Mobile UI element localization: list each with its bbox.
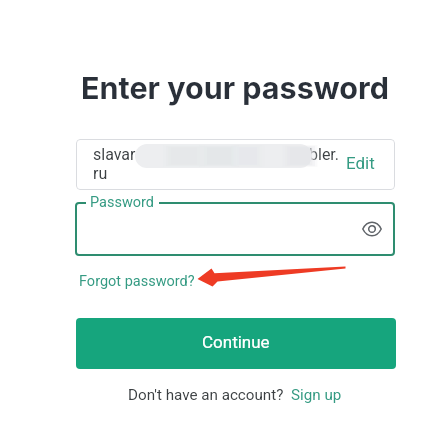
- button[interactable]: Sign up: [291, 386, 342, 404]
- staticText: slavar: [93, 145, 136, 164]
- staticText: Continue: [202, 332, 270, 352]
- button[interactable]: Forgot password?: [79, 273, 195, 290]
- staticText: Enter your password: [81, 69, 389, 106]
- button[interactable]: Edit: [346, 153, 375, 173]
- button[interactable]: Show password: [359, 216, 385, 242]
- staticText: ru: [93, 164, 108, 183]
- staticText: bler.: [309, 145, 340, 164]
- button[interactable]: Continue: [76, 318, 396, 369]
- button[interactable]: slavar: [76, 139, 395, 190]
- staticText: Don't have an account?: [128, 386, 284, 404]
- staticText: Password: [90, 194, 155, 211]
